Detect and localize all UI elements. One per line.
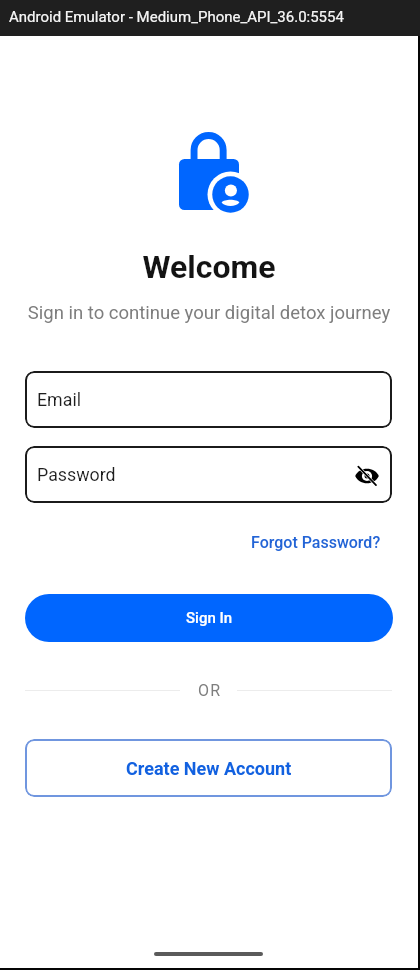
staticText: Welcome [0,248,419,286]
staticText: Password [37,464,116,485]
button[interactable]: Email [25,371,392,428]
staticText: Email [37,389,82,410]
staticText: Sign in to continue your digital detox j… [0,302,419,324]
staticText: Android Emulator - Medium_Phone_API_36.0… [9,8,344,26]
button[interactable]: Show password [349,458,385,494]
button[interactable]: Sign In [25,594,393,642]
staticText: Sign In [186,609,233,627]
staticText: Create New Account [126,758,292,779]
button[interactable]: Password [25,446,392,503]
staticText: OR [198,681,222,699]
button[interactable]: Forgot Password? [251,533,381,552]
button[interactable]: Create New Account [25,739,392,797]
